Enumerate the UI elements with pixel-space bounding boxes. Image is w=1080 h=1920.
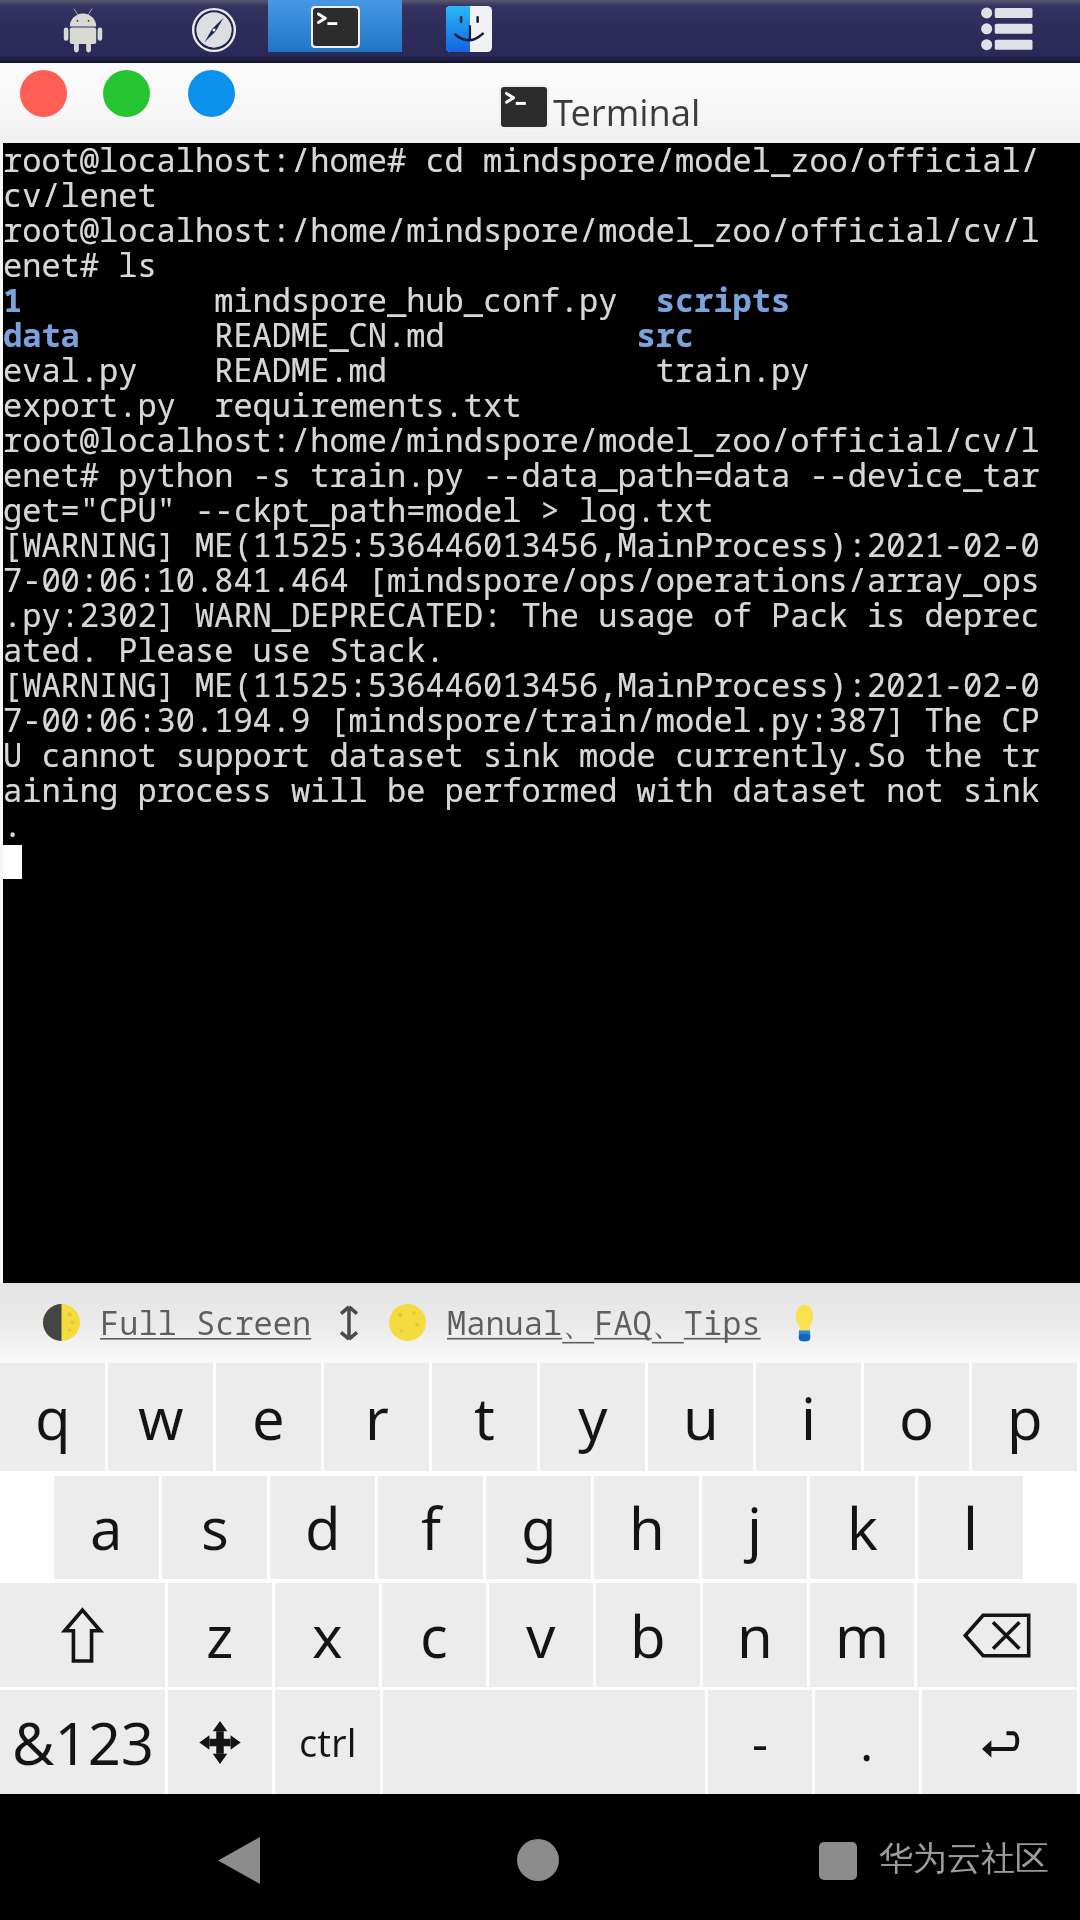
staticText: o (899, 1378, 935, 1457)
button[interactable]: Finder (446, 6, 492, 52)
staticText: eval.py README.md train.py (3, 348, 810, 392)
button[interactable]: Back (189, 1810, 289, 1910)
button[interactable]: - (708, 1690, 812, 1794)
button[interactable]: q (0, 1363, 105, 1471)
staticText: 7-00:06:10.841.464 [mindspore/ops/operat… (3, 558, 1040, 602)
button[interactable]: Terminal (313, 8, 358, 46)
staticText: g (521, 1488, 557, 1567)
button[interactable]: k (810, 1476, 915, 1579)
button[interactable]: Close (20, 70, 67, 117)
button[interactable]: Full screen toggle (43, 1304, 80, 1341)
staticText: export.py requirements.txt (3, 383, 522, 427)
button[interactable]: Android (63, 8, 103, 53)
button[interactable]: Menu (980, 8, 1038, 54)
staticText: a (90, 1488, 123, 1567)
button[interactable]: Tips (793, 1304, 816, 1342)
button[interactable]: ctrl (275, 1690, 380, 1794)
staticText: m (835, 1596, 890, 1675)
button[interactable]: Home (488, 1810, 588, 1910)
staticText: p (1007, 1378, 1043, 1457)
button[interactable]: a (54, 1476, 159, 1579)
button[interactable]: l (918, 1476, 1023, 1579)
staticText: e (252, 1378, 285, 1457)
staticText: 华为云社区 (879, 1837, 1049, 1880)
button[interactable]: d (270, 1476, 375, 1579)
staticText: . (860, 1708, 874, 1776)
button[interactable]: o (864, 1363, 969, 1471)
button[interactable]: Manual、FAQ、Tips (447, 1301, 761, 1345)
button[interactable]: e (216, 1363, 321, 1471)
button[interactable]: n (703, 1583, 807, 1687)
staticText: root@localhost:/home/mindspore/model_zoo… (3, 208, 1040, 252)
staticText: cv/lenet (3, 173, 157, 217)
button[interactable]: Enter (922, 1690, 1077, 1794)
staticText: i (801, 1378, 816, 1457)
button[interactable]: r (324, 1363, 429, 1471)
button[interactable]: s (162, 1476, 267, 1579)
staticText: - (752, 1708, 769, 1776)
button[interactable]: c (382, 1583, 486, 1687)
button[interactable]: Backspace (917, 1583, 1077, 1687)
staticText: s (201, 1488, 229, 1567)
button[interactable]: Terminal window (268, 0, 402, 52)
button[interactable]: Manual (389, 1304, 426, 1341)
staticText: data README_CN.md src (3, 313, 695, 357)
staticText: w (138, 1378, 184, 1457)
button[interactable]: b (596, 1583, 700, 1687)
button[interactable]: h (594, 1476, 699, 1579)
staticText: n (737, 1596, 773, 1675)
staticText: .py:2302] WARN_DEPRECATED: The usage of … (3, 593, 1040, 637)
staticText: u (683, 1378, 719, 1457)
staticText: enet# python -s train.py --data_path=dat… (3, 453, 1040, 497)
staticText: z (206, 1596, 234, 1675)
staticText: 7-00:06:30.194.9 [mindspore/train/model.… (3, 698, 1040, 742)
button[interactable]: Recents (788, 1811, 888, 1911)
staticText: t (474, 1378, 495, 1457)
staticText: y (578, 1378, 608, 1457)
button[interactable]: g (486, 1476, 591, 1579)
staticText: r (365, 1378, 389, 1457)
staticText: enet# ls (3, 243, 157, 287)
staticText: ated. Please use Stack. (3, 628, 445, 672)
staticText: d (305, 1488, 341, 1567)
staticText: get="CPU" --ckpt_path=model > log.txt (3, 488, 714, 532)
button[interactable]: w (108, 1363, 213, 1471)
staticText: l (963, 1488, 978, 1567)
button[interactable]: Safari (190, 6, 238, 54)
staticText: root@localhost:/home# cd mindspore/model… (3, 138, 1040, 182)
staticText: q (35, 1378, 71, 1457)
button[interactable]: Move (168, 1690, 272, 1794)
staticText: ctrl (299, 1716, 357, 1768)
staticText: root@localhost:/home/mindspore/model_zoo… (3, 418, 1040, 462)
button[interactable]: t (432, 1363, 537, 1471)
staticText: x (312, 1596, 343, 1675)
staticText: v (526, 1596, 556, 1675)
button[interactable]: x (275, 1583, 379, 1687)
staticText: Terminal (553, 88, 701, 137)
button[interactable]: i (756, 1363, 861, 1471)
staticText: aining process will be performed with da… (3, 768, 1040, 812)
button[interactable]: Maximize (103, 70, 150, 117)
staticText: [WARNING] ME(11525:536446013456,MainProc… (3, 523, 1040, 567)
staticText: 1 mindspore_hub_conf.py scripts (3, 278, 791, 322)
staticText: h (629, 1488, 665, 1567)
button[interactable]: u (648, 1363, 753, 1471)
button[interactable]: v (489, 1583, 593, 1687)
button[interactable]: j (702, 1476, 807, 1579)
button[interactable]: Minimize (188, 70, 235, 117)
button[interactable]: f (378, 1476, 483, 1579)
staticText: U cannot support dataset sink mode curre… (3, 733, 1040, 777)
button[interactable]: m (810, 1583, 914, 1687)
button[interactable]: y (540, 1363, 645, 1471)
button[interactable]: Full Screen (100, 1301, 312, 1345)
button[interactable]: &123 (0, 1690, 165, 1794)
button[interactable]: p (972, 1363, 1077, 1471)
button[interactable]: Shift (0, 1583, 165, 1687)
button[interactable]: Resize (336, 1305, 362, 1341)
staticText: f (421, 1488, 441, 1567)
staticText: . (3, 803, 23, 847)
staticText: j (747, 1488, 762, 1567)
button[interactable]: . (815, 1690, 919, 1794)
button[interactable]: z (168, 1583, 272, 1687)
